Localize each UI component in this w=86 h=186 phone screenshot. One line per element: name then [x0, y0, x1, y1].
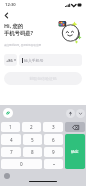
staticText: 4	[10, 137, 13, 143]
button[interactable]: 0	[1, 159, 42, 169]
staticText: 3	[52, 124, 55, 130]
button[interactable]: Input method	[3, 108, 13, 118]
staticText: 7	[10, 149, 13, 155]
button[interactable]: 6	[44, 134, 63, 145]
staticText: 1	[9, 124, 12, 130]
staticText: 输入手机号	[24, 58, 44, 63]
button[interactable]: Back	[1, 10, 12, 21]
button[interactable]: 获取短信验证码	[4, 72, 82, 85]
staticText: 手机号码是?	[4, 29, 34, 36]
button[interactable]: Symbols	[44, 159, 63, 169]
button[interactable]: Backspace	[65, 122, 85, 132]
staticText: 确定	[71, 149, 79, 154]
staticText: 0	[20, 161, 23, 167]
staticText: 8	[31, 149, 34, 155]
staticText: 6	[52, 137, 55, 143]
staticText: 12:30	[5, 2, 16, 8]
staticText: 未注册手机号, 登录时将自动注册	[4, 43, 42, 46]
button[interactable]: 9	[44, 147, 63, 157]
button[interactable]: Emoji	[4, 173, 10, 179]
button[interactable]: 3	[43, 122, 63, 132]
button[interactable]: +86	[4, 54, 17, 66]
staticText: 获取短信验证码	[29, 76, 57, 81]
staticText: 5	[31, 137, 34, 143]
button[interactable]: 7	[1, 147, 21, 157]
button[interactable]: 4	[1, 134, 21, 145]
button[interactable]: 1	[1, 122, 20, 132]
button[interactable]: Hide keyboard	[76, 109, 85, 118]
button[interactable]: 8	[23, 147, 42, 157]
staticText: +86	[6, 58, 13, 63]
button[interactable]: Voice input	[66, 109, 75, 118]
button[interactable]: 确定	[65, 134, 85, 169]
button[interactable]: 2	[22, 122, 41, 132]
staticText: 2	[30, 124, 33, 130]
staticText: Hi, 您的	[4, 22, 24, 29]
staticText: 9	[52, 149, 55, 155]
button[interactable]: 5	[23, 134, 42, 145]
button[interactable]: 输入手机号	[19, 54, 82, 66]
